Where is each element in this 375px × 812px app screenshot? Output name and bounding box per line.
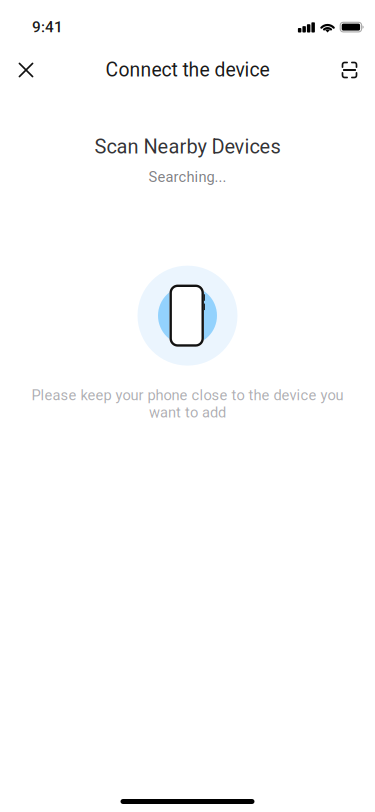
button[interactable]: Scan code [327, 54, 371, 86]
staticText: Searching... [148, 168, 226, 186]
staticText: Please keep your phone close to the devi… [31, 387, 343, 404]
staticText: want to add [149, 404, 226, 421]
button[interactable]: Close [4, 54, 48, 86]
staticText: Scan Nearby Devices [94, 135, 280, 158]
staticText: 9:41 [32, 18, 63, 36]
staticText: Connect the device [105, 59, 269, 81]
